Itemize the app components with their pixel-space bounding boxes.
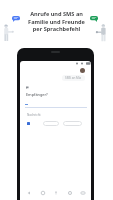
button[interactable]: Einstellungen (64, 187, 75, 198)
button[interactable]: Tastatur (77, 187, 88, 198)
button[interactable]: Zurück (23, 187, 34, 198)
button[interactable]: Vorschlag eins (43, 121, 59, 126)
button[interactable]: Profilbild (80, 68, 85, 73)
button[interactable]: Vorschlag zwei (63, 121, 82, 126)
staticText: Anrufe und SMS an Familie und Freunde pe… (0, 10, 113, 32)
staticText: SMS an Mia (65, 76, 82, 80)
button[interactable]: Emoji (37, 187, 48, 198)
button[interactable]: SMS an Mia (62, 75, 85, 81)
button[interactable]: Mikrofon (50, 187, 61, 198)
staticText: Nachricht (27, 113, 41, 117)
button[interactable]: Senden (27, 122, 30, 125)
staticText: Empfänger? (26, 92, 48, 97)
